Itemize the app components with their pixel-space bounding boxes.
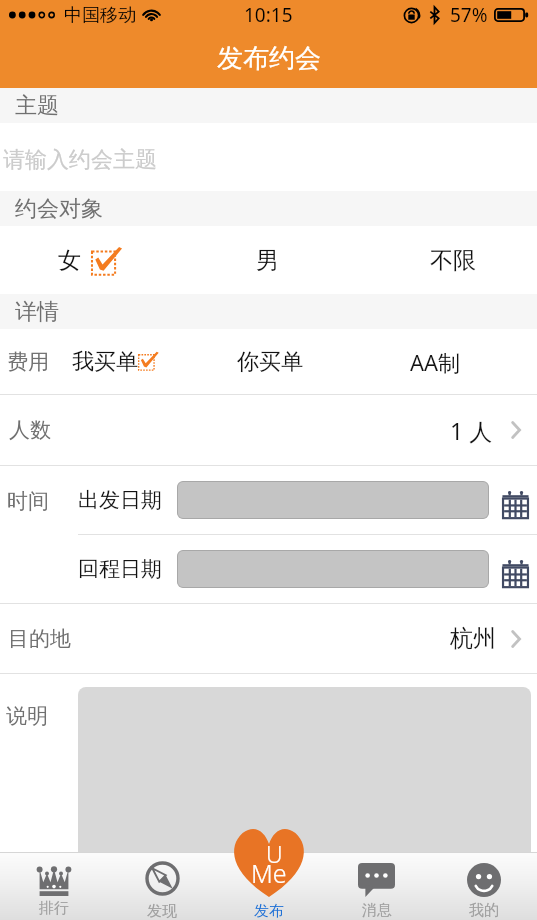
- button[interactable]: 男: [217, 226, 317, 294]
- staticText: 目的地: [8, 626, 71, 652]
- staticText: 发现: [147, 902, 177, 920]
- staticText: 消息: [362, 901, 392, 920]
- button[interactable]: 人数: [0, 395, 537, 465]
- staticText: 女: [58, 246, 81, 275]
- staticText: 主题: [15, 92, 59, 120]
- other: 选择日期: [501, 491, 530, 519]
- staticText: Me: [251, 856, 287, 890]
- staticText: 排行: [39, 899, 69, 918]
- staticText: 1 人: [450, 415, 493, 446]
- staticText: 发布约会: [217, 42, 321, 75]
- staticText: 杭州: [450, 624, 496, 653]
- staticText: 时间: [7, 488, 49, 514]
- button[interactable]: [78, 687, 531, 852]
- staticText: 费用: [7, 349, 49, 375]
- staticText: 出发日期: [78, 487, 162, 513]
- staticText: 我买单: [72, 348, 138, 376]
- button[interactable]: 消息: [323, 852, 430, 920]
- staticText: 你买单: [237, 348, 303, 376]
- button[interactable]: 我买单: [72, 329, 160, 394]
- button[interactable]: 不限: [405, 226, 500, 294]
- staticText: 回程日期: [78, 556, 162, 582]
- staticText: 我的: [469, 901, 499, 920]
- button[interactable]: 目的地: [0, 604, 537, 673]
- staticText: 详情: [15, 298, 59, 326]
- staticText: 请输入约会主题: [3, 146, 157, 174]
- button[interactable]: 请输入约会主题: [0, 123, 537, 191]
- button[interactable]: U: [229, 829, 309, 897]
- staticText: 人数: [9, 417, 51, 443]
- button[interactable]: 出发日期: [78, 466, 537, 534]
- button[interactable]: 女: [58, 226, 124, 294]
- button[interactable]: 排行: [0, 852, 108, 920]
- staticText: U: [266, 838, 283, 869]
- other: 选择日期: [501, 560, 530, 588]
- staticText: 中国移动: [64, 4, 136, 27]
- staticText: 发布: [254, 902, 284, 920]
- button[interactable]: 回程日期: [78, 535, 537, 603]
- button[interactable]: 发现: [108, 852, 216, 920]
- button[interactable]: 我的: [430, 852, 537, 920]
- button[interactable]: AA制: [390, 329, 480, 394]
- staticText: AA制: [410, 347, 461, 377]
- staticText: 男: [256, 246, 279, 275]
- staticText: 10:15: [244, 2, 293, 28]
- staticText: 不限: [430, 246, 476, 275]
- button[interactable]: 你买单: [220, 329, 320, 394]
- staticText: 约会对象: [15, 195, 103, 223]
- staticText: 说明: [6, 703, 48, 729]
- staticText: 57%: [450, 2, 488, 28]
